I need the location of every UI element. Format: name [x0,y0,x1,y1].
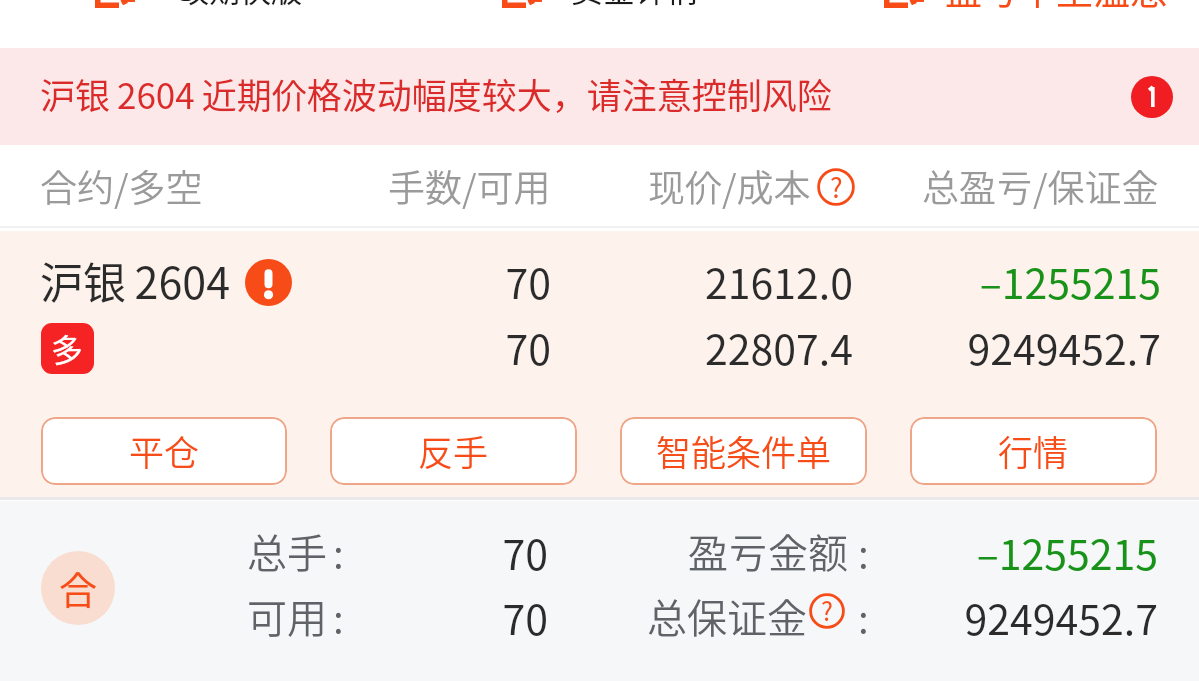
staticText: : [858,587,869,645]
staticText: 总盈亏/保证金 [922,159,1159,213]
staticText: 21612.0 [553,251,853,310]
button[interactable]: 行情 [910,417,1157,485]
button[interactable]: 反手 [330,417,577,485]
other: 合计 [41,551,115,625]
staticText: 9249452.7 [858,587,1158,646]
staticText: 盈亏金额 [688,522,848,580]
staticText: 70 [400,587,548,646]
staticText: 手数/可用 [388,159,551,213]
other: 风险提示 [245,259,292,306]
staticText: 70 [400,522,548,581]
staticText: 总手 [247,522,327,580]
staticText: 改期快版 [178,0,302,11]
staticText: 合 [59,560,98,615]
staticText: : [333,587,344,645]
staticText: –1255215 [858,522,1158,581]
staticText: : [333,522,344,580]
button[interactable]: 沪银 2604 近期价格波动幅度较大，请注意控制风险 [0,48,1199,145]
other: 1 条风险提示 [1131,76,1173,118]
staticText: 智能条件单 [656,425,832,476]
staticText: 70 [351,251,551,310]
staticText: ? [821,592,833,628]
staticText: 反手 [418,425,489,476]
staticText: 多 [51,325,84,371]
staticText: 70 [351,317,551,376]
staticText: 可用 [247,587,327,645]
staticText: 9249452.7 [761,317,1161,376]
staticText: –1255215 [761,251,1161,310]
button[interactable] [0,231,1199,406]
staticText: 盈亏中至温息 [945,0,1167,10]
staticText: 合约/多空 [40,159,203,213]
staticText: 总保证金 [647,587,807,645]
staticText: 现价/成本 [648,159,811,213]
button[interactable]: 平仓 [41,417,287,485]
staticText: 资金详情 [571,0,700,11]
staticText: ? [830,167,843,205]
staticText: : [858,522,869,580]
staticText: 沪银 2604 [40,249,231,311]
staticText: 平仓 [129,425,200,476]
staticText: 沪银 2604 近期价格波动幅度较大，请注意控制风险 [40,68,832,119]
staticText: 22807.4 [553,317,853,376]
staticText: 行情 [998,425,1069,476]
button[interactable]: 智能条件单 [620,417,867,485]
